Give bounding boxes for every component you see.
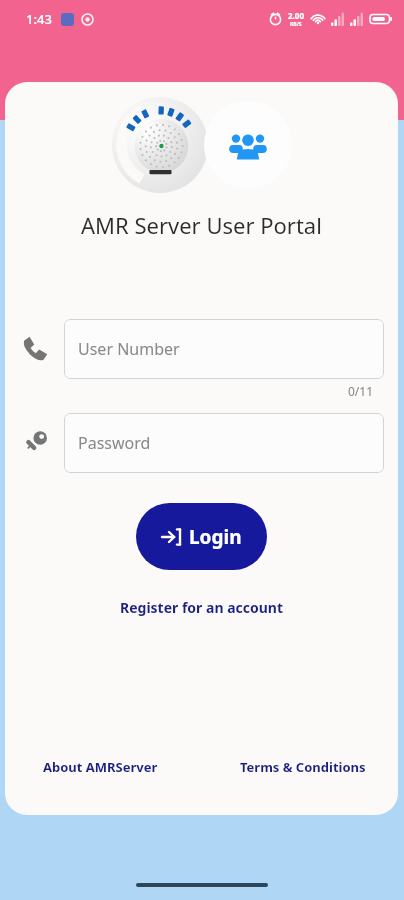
staticText: 2.00 — [288, 10, 304, 21]
staticText: KB/S — [290, 21, 302, 28]
staticText: About AMRServer — [43, 758, 158, 776]
button[interactable]: User Number — [64, 319, 384, 379]
staticText: Register for an account — [120, 598, 283, 617]
staticText: Password — [78, 432, 151, 454]
staticText: Login — [189, 524, 242, 550]
staticText: Terms & Conditions — [240, 758, 366, 776]
staticText: 1:43 — [26, 10, 52, 28]
staticText: 0/11 — [348, 383, 374, 399]
button[interactable]: Terms & Conditions — [234, 753, 372, 781]
button[interactable]: Login — [136, 503, 267, 570]
button[interactable]: About AMRServer — [37, 753, 164, 781]
button[interactable]: Password — [64, 413, 384, 473]
button[interactable]: Password — [15, 423, 55, 463]
button[interactable]: Phone number — [15, 329, 55, 369]
staticText: User Number — [78, 338, 180, 360]
staticText: AMR Server User Portal — [81, 210, 322, 240]
button[interactable]: Register for an account — [112, 594, 291, 621]
